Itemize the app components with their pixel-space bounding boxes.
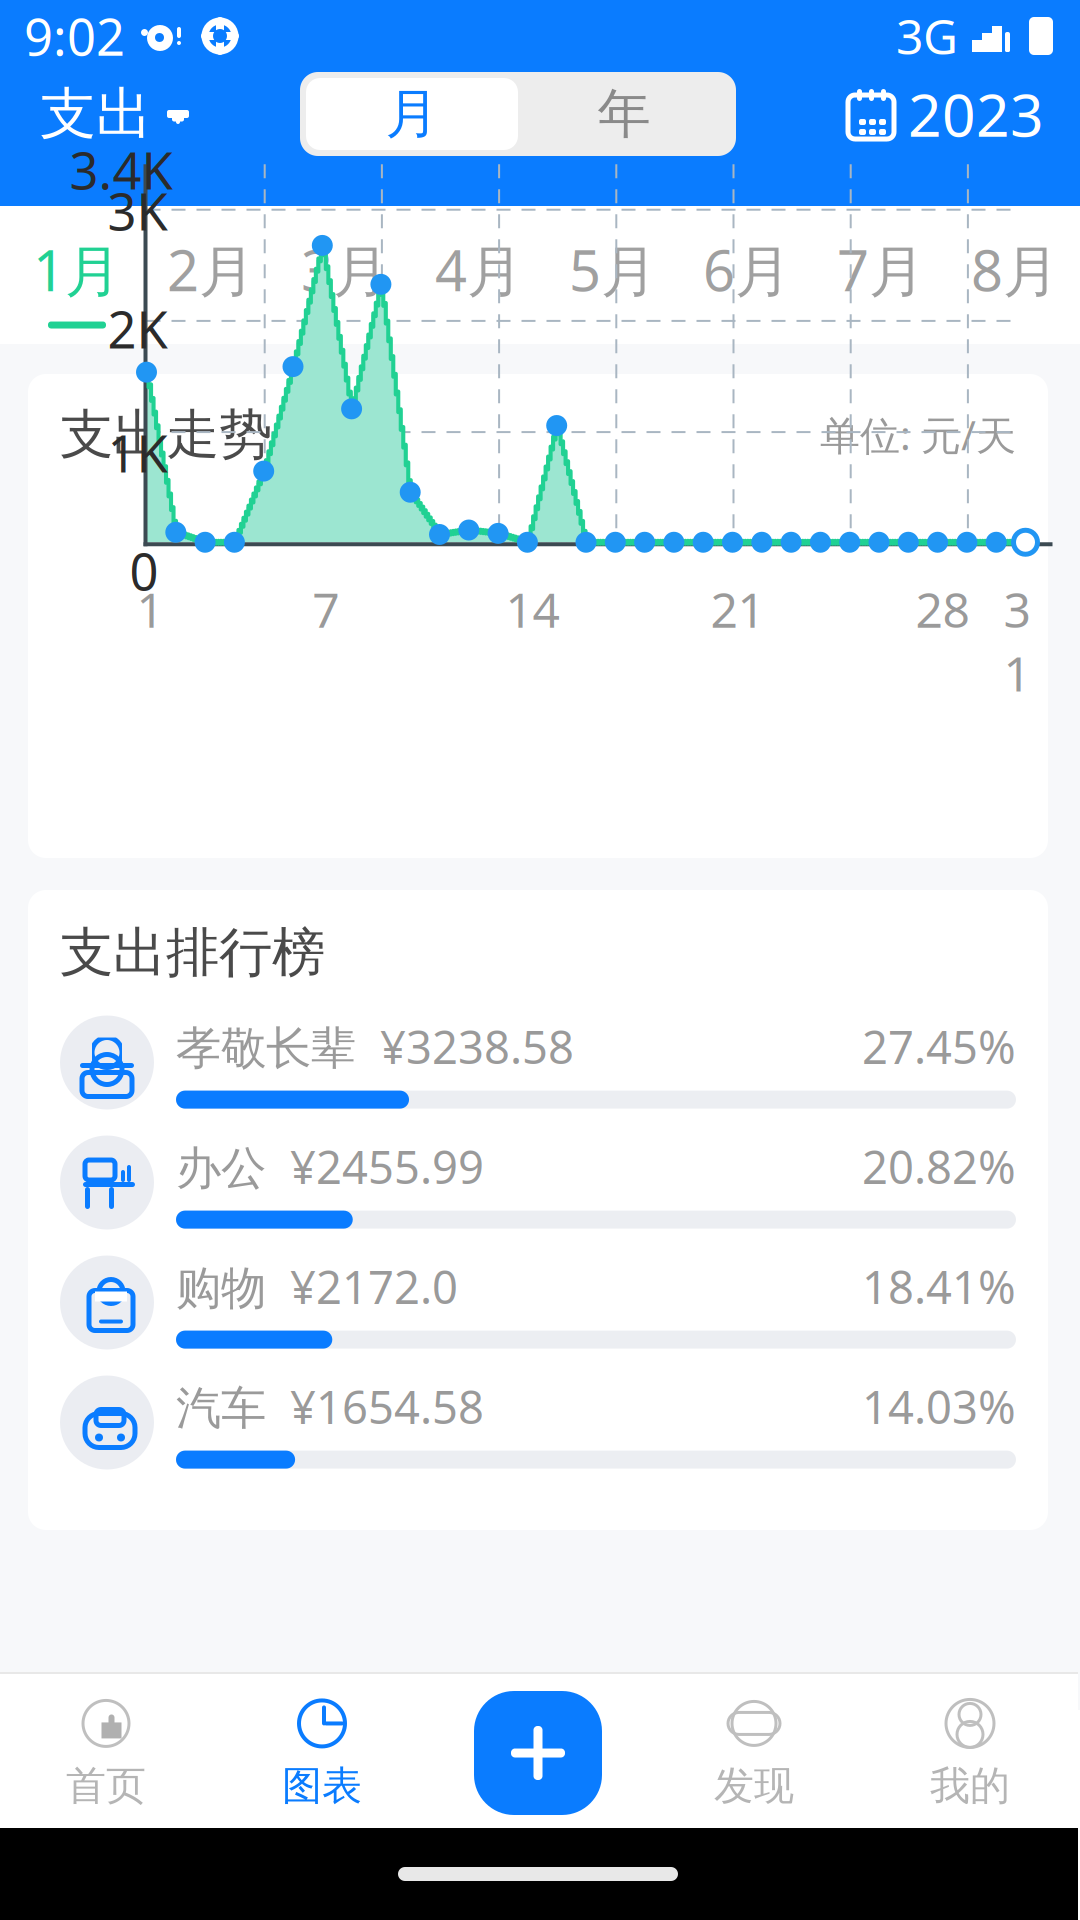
button[interactable]: 8月 (948, 218, 1080, 344)
staticText: 2K (107, 295, 167, 363)
staticText: 9:02 (24, 2, 125, 70)
staticText: 发现 (714, 1761, 794, 1810)
staticText: 7月 (837, 232, 925, 307)
staticText: 1 (136, 577, 163, 641)
button[interactable]: 首页 (0, 1678, 214, 1828)
staticText: 3G (896, 4, 958, 68)
staticText: 14.03% (862, 1376, 1016, 1437)
staticText: 27.45% (862, 1016, 1016, 1077)
staticText: 4月 (435, 232, 523, 307)
staticText: 0 (129, 537, 158, 605)
button[interactable]: 支出 (34, 72, 196, 156)
staticText: 购物 ¥2172.0 (176, 1256, 458, 1317)
button[interactable]: 3月 (278, 218, 412, 344)
staticText: 3K (107, 177, 167, 245)
button[interactable]: 图表 (214, 1678, 430, 1828)
staticText: 图表 (282, 1761, 362, 1810)
button[interactable]: 6月 (680, 218, 814, 344)
button[interactable] (430, 1678, 646, 1828)
button[interactable]: 5月 (546, 218, 680, 344)
staticText: 汽车 ¥1654.58 (176, 1376, 484, 1437)
staticText: 3月 (301, 232, 389, 307)
button[interactable]: 发现 (646, 1678, 862, 1828)
button[interactable]: 1月 (10, 218, 144, 344)
staticText: 1月 (33, 232, 121, 307)
staticText: 8月 (971, 232, 1059, 307)
button[interactable]: 2月 (144, 218, 278, 344)
button[interactable]: 年 (518, 78, 730, 150)
staticText: 28 (916, 577, 970, 641)
staticText: 21 (710, 577, 764, 641)
staticText: 支出排行榜 (60, 920, 325, 985)
staticText: 5月 (569, 232, 657, 307)
button[interactable]: 购物 ¥2172.0 (60, 1255, 1016, 1349)
button[interactable]: 4月 (412, 218, 546, 344)
staticText: 31 (1003, 577, 1030, 705)
staticText: 孝敬长辈 ¥3238.58 (176, 1016, 574, 1077)
button[interactable]: 2023 (840, 72, 1050, 156)
staticText: 年 (597, 81, 650, 147)
staticText: 支出 (40, 80, 152, 148)
staticText: 20.82% (862, 1136, 1016, 1197)
staticText: 7 (312, 577, 339, 641)
staticText: 6月 (703, 232, 791, 307)
button[interactable]: 月 (306, 78, 518, 150)
staticText: 单位: 元/天 (820, 408, 1016, 461)
staticText: 支出走势 (60, 402, 272, 467)
staticText: 3.4K (69, 136, 172, 204)
staticText: 2023 (908, 75, 1044, 153)
button[interactable]: 我的 (862, 1678, 1078, 1828)
staticText: 14 (505, 577, 559, 641)
staticText: 首页 (66, 1761, 146, 1810)
button[interactable]: 7月 (814, 218, 948, 344)
staticText: 18.41% (862, 1256, 1016, 1317)
button[interactable]: 孝敬长辈 ¥3238.58 (60, 1015, 1016, 1109)
staticText: 办公 ¥2455.99 (176, 1136, 484, 1197)
button[interactable]: 办公 ¥2455.99 (60, 1135, 1016, 1229)
staticText: 月 (385, 81, 438, 147)
button[interactable]: 汽车 ¥1654.58 (60, 1375, 1016, 1469)
staticText: 2月 (167, 232, 255, 307)
staticText: 我的 (930, 1761, 1010, 1810)
staticText: 1K (107, 419, 167, 487)
